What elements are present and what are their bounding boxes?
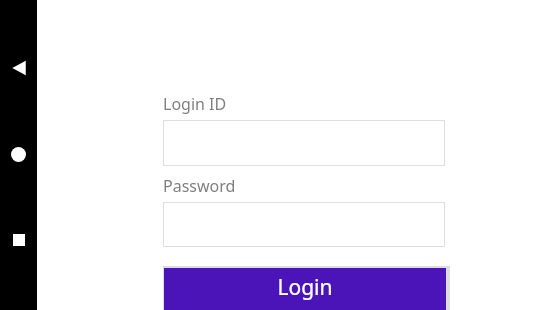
- button[interactable]: Recent apps: [0, 218, 37, 262]
- button[interactable]: Password input: [163, 202, 445, 247]
- button[interactable]: Login ID input: [163, 120, 445, 166]
- staticText: Login ID: [163, 93, 227, 115]
- staticText: Login: [277, 273, 333, 302]
- button[interactable]: Home: [0, 132, 37, 176]
- button[interactable]: Back: [0, 46, 37, 90]
- staticText: Password: [163, 175, 236, 197]
- button[interactable]: Login: [164, 268, 446, 310]
